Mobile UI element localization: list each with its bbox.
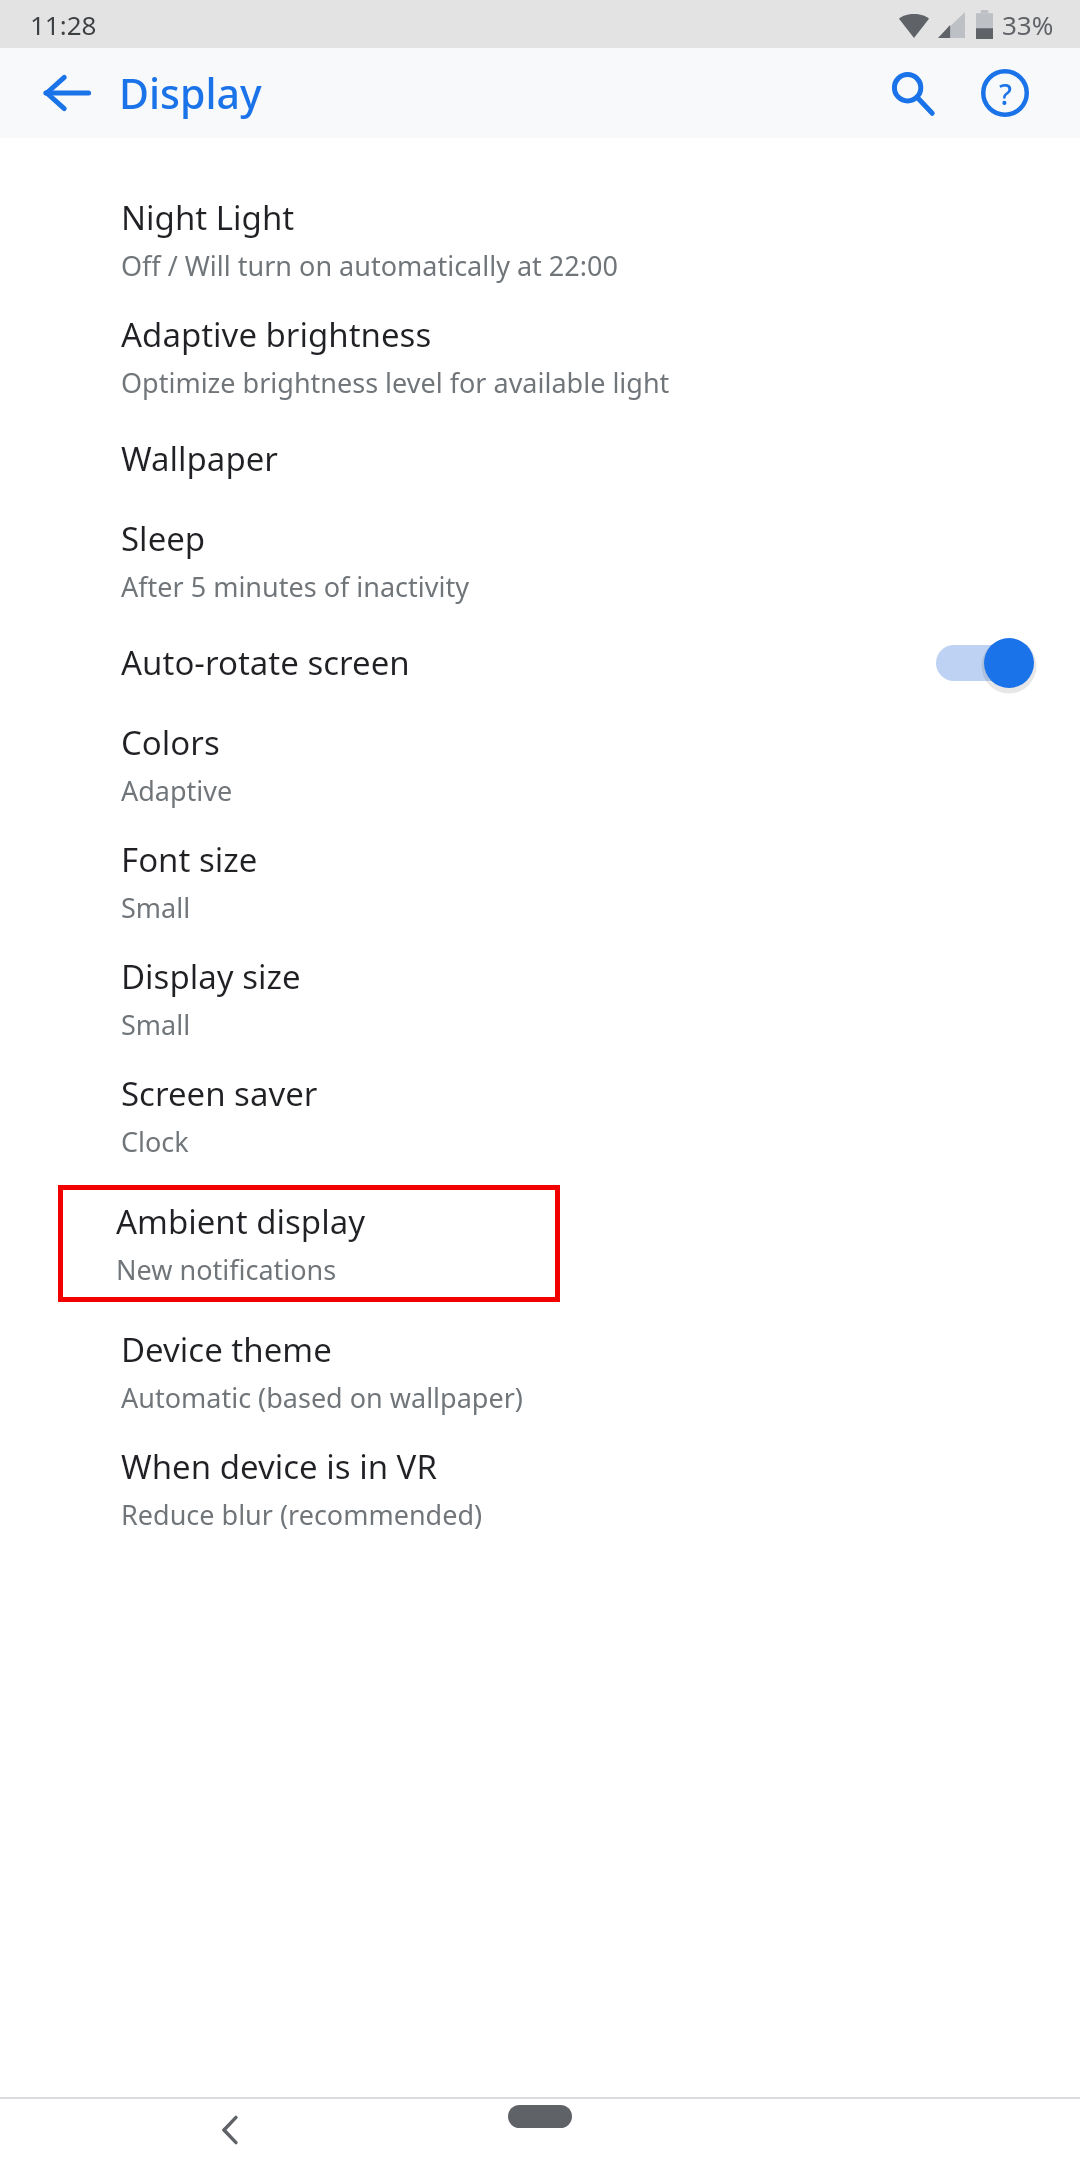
button[interactable]: Help [963,51,1047,135]
staticText: Small [121,889,191,926]
staticText: After 5 minutes of inactivity [121,568,469,605]
button[interactable]: Sleep [0,502,1080,619]
staticText: Off / Will turn on automatically at 22:0… [121,247,618,284]
staticText: Optimize brightness level for available … [121,364,670,401]
button[interactable]: Back [190,2099,270,2160]
button[interactable]: Ambient display [58,1185,560,1302]
button[interactable]: Device theme [0,1313,1080,1430]
staticText: Night Light [121,195,295,240]
staticText: Adaptive brightness [121,312,432,357]
staticText: Ambient display [116,1199,366,1244]
button[interactable]: Auto-rotate screen [922,624,1042,702]
button[interactable]: Home [508,2105,572,2128]
staticText: 11:28 [30,7,97,42]
staticText: When device is in VR [121,1444,437,1489]
staticText: Adaptive [121,772,233,809]
staticText: New notifications [116,1251,337,1288]
button[interactable]: Night Light [0,181,1080,298]
button[interactable]: Font size [0,823,1080,940]
button[interactable]: Back [25,51,109,135]
button[interactable]: Screen saver [0,1057,1080,1174]
staticText: Screen saver [121,1071,318,1116]
button[interactable]: Auto-rotate screen [0,619,1080,706]
button[interactable]: Adaptive brightness [0,298,1080,415]
staticText: Sleep [121,516,206,561]
staticText: Automatic (based on wallpaper) [121,1379,523,1416]
staticText: Auto-rotate screen [121,640,410,685]
button[interactable]: Wallpaper [0,415,1080,502]
button[interactable]: Search [870,51,954,135]
staticText: Clock [121,1123,189,1160]
staticText: Reduce blur (recommended) [121,1496,483,1533]
staticText: Display size [121,954,301,999]
staticText: Device theme [121,1327,332,1372]
staticText: Wallpaper [121,436,278,481]
button[interactable]: Colors [0,706,1080,823]
staticText: Font size [121,837,258,882]
button[interactable]: Display size [0,940,1080,1057]
staticText: Colors [121,720,220,765]
staticText: Display [119,65,262,121]
staticText: Small [121,1006,191,1043]
staticText: ? [999,74,1012,113]
button[interactable]: When device is in VR [0,1430,1080,1547]
staticText: 33% [1002,7,1054,42]
